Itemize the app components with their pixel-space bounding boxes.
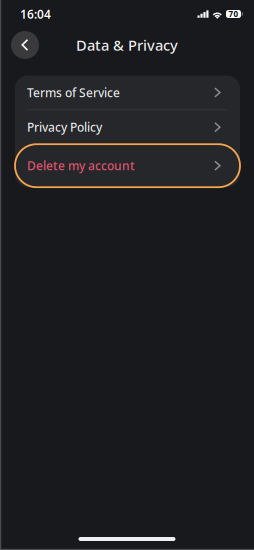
button[interactable]: Delete my account — [15, 144, 240, 187]
staticText: Data & Privacy — [76, 35, 178, 55]
staticText: 70 — [228, 9, 238, 19]
button[interactable]: Privacy Policy — [15, 110, 240, 144]
staticText: Delete my account — [27, 158, 135, 174]
button[interactable]: Back — [10, 30, 40, 60]
button[interactable]: Terms of Service — [15, 75, 240, 109]
staticText: Privacy Policy — [27, 119, 102, 135]
staticText: 16:04 — [20, 6, 51, 22]
staticText: Terms of Service — [27, 84, 120, 100]
